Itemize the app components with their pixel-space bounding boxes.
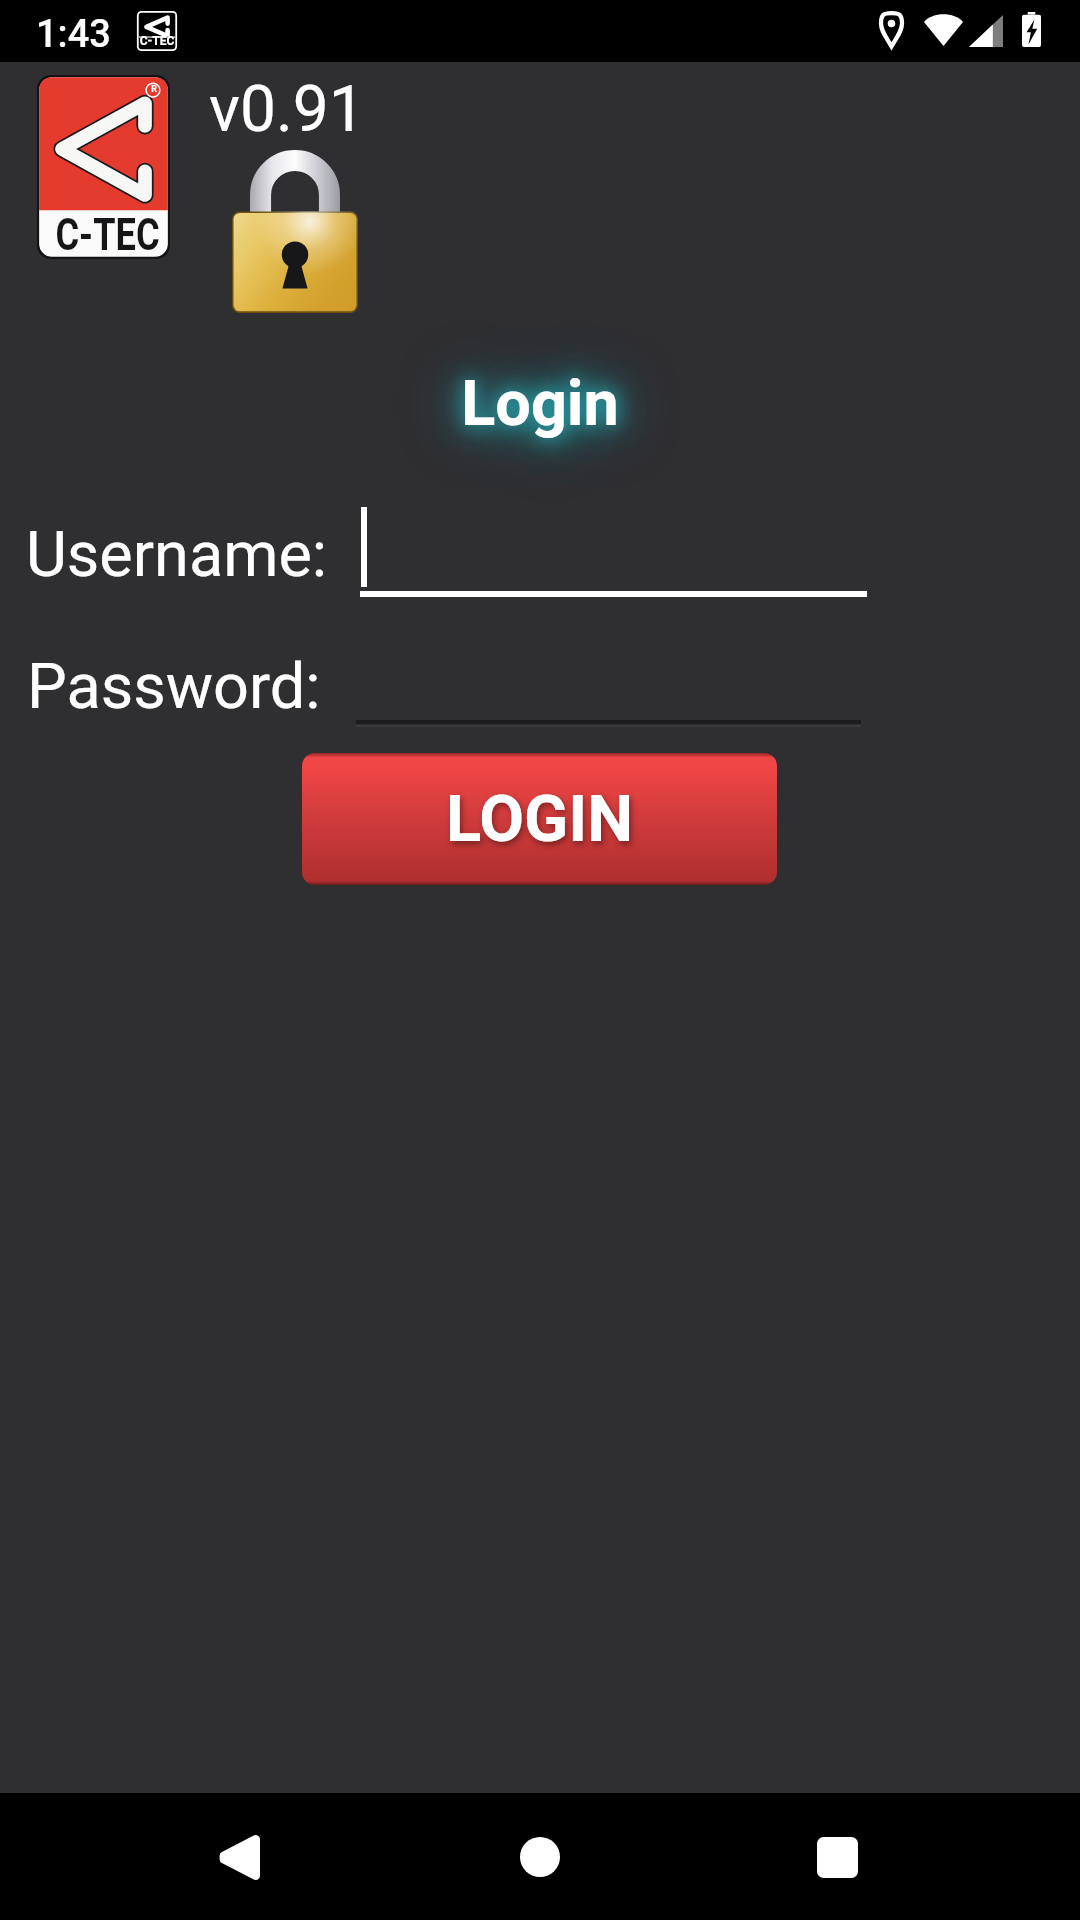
button[interactable]: Home xyxy=(480,1813,600,1901)
button[interactable]: Username input field xyxy=(360,500,867,598)
staticText: Username: xyxy=(26,518,328,592)
staticText: Password: xyxy=(27,650,321,724)
staticText: LOGIN xyxy=(446,781,634,857)
button[interactable]: Recent apps xyxy=(777,1813,897,1901)
button[interactable]: LOGIN xyxy=(302,753,777,885)
button[interactable]: Back xyxy=(178,1813,298,1901)
staticText: C-TEC xyxy=(53,209,162,261)
staticText: R xyxy=(143,84,165,95)
staticText: Login xyxy=(0,367,1080,441)
staticText: C-TEC xyxy=(137,34,177,51)
staticText: Login xyxy=(0,367,1080,441)
button[interactable]: Password input field xyxy=(356,636,861,728)
staticText: 1:43 xyxy=(36,12,111,57)
staticText: v0.91 xyxy=(209,72,365,147)
staticText: Login xyxy=(0,367,1080,441)
